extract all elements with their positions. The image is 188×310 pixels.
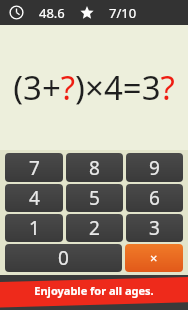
staticText: 9 [149,155,160,181]
staticText: 2 [89,215,100,241]
button[interactable]: 3 [126,214,183,242]
staticText: 8 [89,155,100,181]
staticText: 48.6 [39,4,65,22]
staticText: 6 [149,185,160,211]
button[interactable]: 6 [126,184,183,212]
staticText: 0 [58,245,69,271]
button[interactable]: × [125,244,183,272]
button[interactable]: 0 [5,244,122,272]
staticText: 5 [89,185,100,211]
button[interactable]: Stars [79,5,95,21]
staticText: × [150,249,158,267]
staticText: 1 [29,215,40,241]
button[interactable]: 5 [66,184,123,212]
button[interactable]: 7 [5,153,63,182]
button[interactable]: 9 [126,153,183,182]
button[interactable]: Timer [8,4,25,21]
staticText: 3 [149,215,160,241]
button[interactable]: 1 [5,214,63,242]
staticText: 7/10 [109,4,137,22]
staticText: 7 [29,155,40,181]
staticText: Enjoyable for all ages. [0,283,188,298]
button[interactable]: 2 [66,214,123,242]
staticText: (3+?)×4=3? [0,65,188,110]
button[interactable]: 8 [66,153,123,182]
button[interactable]: 4 [5,184,63,212]
staticText: 4 [29,185,40,211]
